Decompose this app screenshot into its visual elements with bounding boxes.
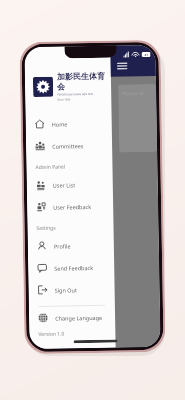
button[interactable]: Sign Out [28,278,115,301]
button[interactable]: Send Feedback [28,256,114,279]
button[interactable]: Home [25,112,112,135]
staticText: 加影民生体育会 [57,71,105,92]
staticText: User List [53,181,76,189]
staticText: 41 [144,53,149,57]
button[interactable]: Open navigation menu [116,59,129,72]
staticText: Home [52,120,68,128]
staticText: Profile [54,242,71,250]
button[interactable]: Profile [28,234,114,257]
staticText: Please se [122,90,144,97]
staticText: Sign Out [55,286,78,294]
staticText: Since 1966 [57,97,71,102]
staticText: Committees [52,142,84,150]
staticText: Send Feedback [54,264,93,272]
staticText: Change Language [55,314,102,322]
button[interactable]: Change Language [29,306,115,329]
staticText: Settings [36,225,57,232]
staticText: User Feedback [53,203,91,211]
staticText: PERSATUAN SUKAN MIN SEN [57,92,93,97]
button[interactable]: User Feedback [27,195,113,218]
button[interactable]: User List [27,173,113,196]
staticText: Version 1.0 [38,330,64,338]
button[interactable]: Committees [26,134,112,157]
staticText: Admin Panel [35,163,65,171]
